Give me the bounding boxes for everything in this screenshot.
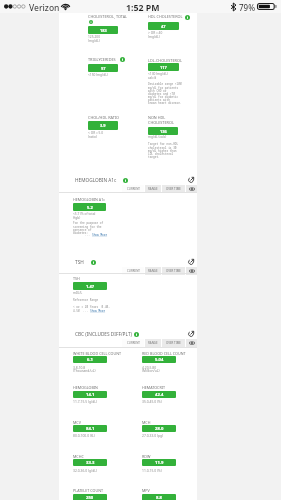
staticText: > OR = 40 (mg/dL) xyxy=(148,31,163,39)
button[interactable]: 33.3 xyxy=(73,459,107,466)
button[interactable]: Show or hide values xyxy=(186,339,197,347)
staticText: 11.7-15.5 (g/dL) xyxy=(73,399,97,403)
staticText: TSH xyxy=(75,259,84,265)
button[interactable]: RANGE xyxy=(145,339,161,347)
staticText: 32.0-36.0 (g/dL) xyxy=(73,468,97,472)
button[interactable]: 28.0 xyxy=(142,425,176,432)
staticText: MCV xyxy=(73,420,81,425)
staticText: 33.3 xyxy=(86,460,95,466)
staticText: <150 (mg/dL) xyxy=(88,73,108,77)
button[interactable]: Show or hide values xyxy=(186,185,197,193)
staticText: MCH xyxy=(142,420,151,425)
button[interactable]: 117 xyxy=(148,63,179,71)
staticText: OVER TIME xyxy=(166,269,181,273)
button[interactable]: 97 xyxy=(88,64,118,72)
button[interactable]: 42.4 xyxy=(142,391,176,398)
button[interactable]: 5.04 xyxy=(142,356,176,363)
staticText: HEMOGLOBIN A1c xyxy=(75,177,117,183)
staticText: Show More xyxy=(90,309,106,313)
staticText: 3.9 xyxy=(100,123,106,128)
staticText: 47 xyxy=(161,24,166,29)
staticText: CURRENT xyxy=(127,187,140,191)
button[interactable]: 1.47 xyxy=(73,282,107,290)
staticText: 117 xyxy=(160,65,167,70)
button[interactable]: 250 xyxy=(73,494,107,500)
staticText: Target for non-HDL cholesterol is 30 mg/… xyxy=(148,142,179,158)
staticText: RDW xyxy=(142,454,151,459)
button[interactable]: 11.9 xyxy=(142,459,176,466)
staticText: OVER TIME xyxy=(166,187,181,191)
staticText: 27.0-33.0 (pg) xyxy=(142,433,164,437)
staticText: 84.1 xyxy=(86,426,95,432)
staticText: 28.0 xyxy=(155,426,164,432)
button[interactable]: RANGE xyxy=(145,185,161,193)
button[interactable]: 183 xyxy=(88,26,118,34)
button[interactable]: Info xyxy=(91,260,96,265)
staticText: For the purpose of screening for the pre… xyxy=(73,221,104,234)
staticText: HEMOGLOBIN A1c xyxy=(73,197,106,202)
button[interactable]: 8.8 xyxy=(142,494,176,500)
button[interactable]: OVER TIME xyxy=(162,185,185,193)
staticText: TSH xyxy=(73,276,80,281)
staticText: 4.50 ... xyxy=(73,309,90,313)
staticText: HEMATOCRIT xyxy=(142,385,166,390)
staticText: 125-200 (mg/dL) xyxy=(88,35,100,43)
staticText: OVER TIME xyxy=(166,341,181,345)
staticText: RANGE xyxy=(148,187,158,191)
staticText: Verizon xyxy=(29,2,60,14)
button[interactable]: Info xyxy=(134,332,139,337)
staticText: Show More xyxy=(92,233,108,237)
staticText: mg/dL (calc) xyxy=(148,135,167,139)
staticText: 4.20-5.80 (Million/uL) xyxy=(142,365,160,373)
button[interactable]: 136 xyxy=(148,127,178,135)
button[interactable]: Info xyxy=(89,20,93,24)
staticText: 42.4 xyxy=(155,392,164,398)
button[interactable]: 47 xyxy=(148,22,179,30)
staticText: 3.8-10.8 (Thousand/uL) xyxy=(73,365,96,373)
button[interactable]: Info xyxy=(120,57,125,62)
button[interactable]: CURRENT xyxy=(122,185,144,193)
button[interactable]: Open detail xyxy=(188,331,194,337)
staticText: 5.04 xyxy=(155,357,164,363)
staticText: WHITE BLOOD CELL COUNT xyxy=(73,351,122,356)
staticText: HEMOGLOBIN xyxy=(73,385,98,390)
staticText: MCHC xyxy=(73,454,84,459)
button[interactable]: 14.1 xyxy=(73,391,107,398)
button[interactable]: Info xyxy=(185,15,190,20)
button[interactable]: Open detail xyxy=(188,177,194,183)
button[interactable]: RANGE xyxy=(145,267,161,275)
button[interactable]: Open detail xyxy=(188,259,194,265)
button[interactable]: CURRENT xyxy=(122,339,144,347)
staticText: mIU/L xyxy=(73,291,83,295)
staticText: CBC (INCLUDES DIFF/PLT) xyxy=(75,331,132,337)
staticText: <5.7 (% of total Hgb) xyxy=(73,212,96,220)
staticText: 250 xyxy=(86,495,94,500)
staticText: < or = 20 Years 0.40- xyxy=(73,305,110,309)
staticText: 136 xyxy=(160,129,167,134)
button[interactable]: 5.2 xyxy=(73,203,106,211)
staticText: CURRENT xyxy=(127,269,140,273)
staticText: 11.9 xyxy=(155,460,164,466)
button[interactable]: OVER TIME xyxy=(162,339,185,347)
button[interactable]: Info xyxy=(123,178,128,183)
staticText: 8.8 xyxy=(156,495,162,500)
button[interactable]: 84.1 xyxy=(73,425,107,432)
staticText: TRIGLYCERIDES xyxy=(88,57,116,62)
button[interactable]: Show More xyxy=(92,233,108,237)
staticText: 183 xyxy=(100,28,107,33)
button[interactable]: Show More xyxy=(90,309,106,313)
button[interactable]: 6.1 xyxy=(73,356,107,363)
button[interactable]: Show or hide values xyxy=(186,267,197,275)
staticText: 79% xyxy=(239,2,255,13)
staticText: MPV xyxy=(142,488,150,493)
staticText: 1:52 PM xyxy=(126,2,160,14)
staticText: CHOLESTEROL, TOTAL xyxy=(88,14,128,19)
staticText: RANGE xyxy=(148,269,158,273)
button[interactable]: CURRENT xyxy=(122,267,144,275)
button[interactable]: OVER TIME xyxy=(162,267,185,275)
staticText: CURRENT xyxy=(127,341,140,345)
button[interactable]: 3.9 xyxy=(88,121,118,130)
staticText: HDL CHOLESTEROL xyxy=(148,14,183,19)
staticText: 5.2 xyxy=(87,205,93,210)
staticText: NON HDL CHOLESTEROL xyxy=(148,115,174,125)
